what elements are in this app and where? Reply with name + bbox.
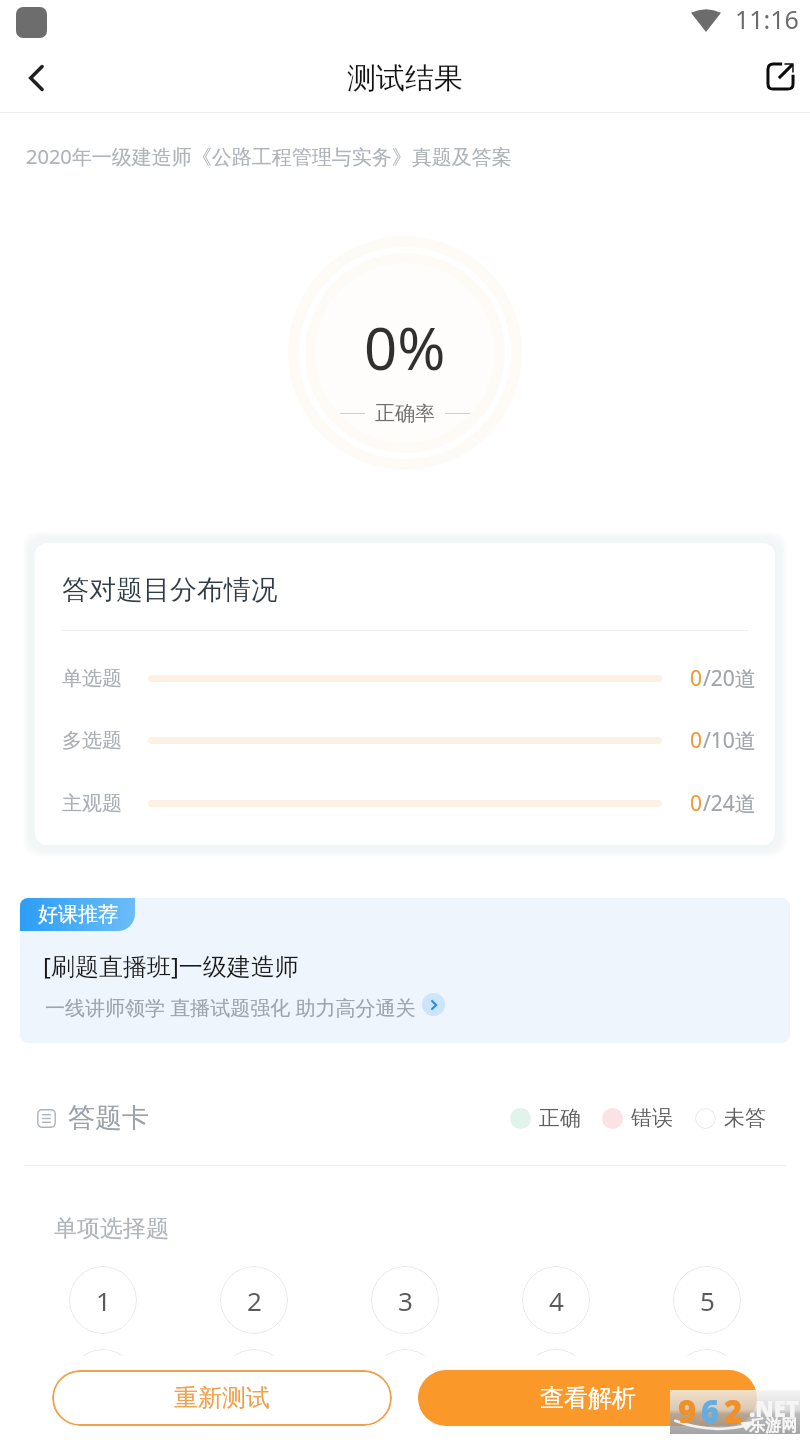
button[interactable]: 2 (220, 1266, 288, 1334)
staticText: 5 (700, 1283, 715, 1318)
staticText: 答题卡 (68, 1101, 149, 1135)
staticText: .NET (749, 1393, 799, 1423)
staticText: 4 (549, 1283, 564, 1318)
staticText: 1 (96, 1283, 111, 1318)
staticText: 7 (247, 1366, 262, 1401)
staticText: 2 (247, 1283, 262, 1318)
staticText: 未答 (724, 1105, 766, 1131)
staticText: /20道 (703, 664, 756, 693)
staticText: [刷题直播班]一级建造师 (43, 949, 299, 982)
staticText: 2020年一级建造师《公路工程管理与实务》真题及答案 (26, 143, 512, 170)
button[interactable]: 4 (522, 1266, 590, 1334)
button[interactable]: 正确 (510, 1105, 581, 1131)
staticText: 主观题 (62, 791, 122, 816)
button[interactable]: 错误 (602, 1105, 673, 1131)
staticText: 查看解析 (540, 1383, 636, 1413)
staticText: 正确率 (375, 401, 435, 426)
staticText: 0 (690, 789, 703, 818)
staticText: 9 (678, 1390, 697, 1432)
staticText: 0% (364, 308, 446, 387)
button[interactable]: 重新测试 (52, 1370, 392, 1426)
button[interactable]: 7 (220, 1349, 288, 1417)
staticText: /24道 (703, 789, 756, 818)
button[interactable]: 好课推荐 (20, 898, 790, 1043)
staticText: 测试结果 (347, 60, 463, 97)
staticText: 6 (96, 1366, 111, 1401)
button[interactable]: 8 (371, 1349, 439, 1417)
staticText: 11:16 (735, 2, 799, 36)
button[interactable]: Share (753, 49, 807, 103)
button[interactable]: Back (8, 49, 66, 107)
button[interactable]: 6 (69, 1349, 137, 1417)
staticText: 多选题 (62, 728, 122, 753)
staticText: 单项选择题 (54, 1214, 169, 1243)
button[interactable]: 答题卡 (37, 1101, 149, 1135)
staticText: 10 (692, 1366, 722, 1401)
staticText: 好课推荐 (38, 902, 118, 927)
staticText: 3 (398, 1283, 413, 1318)
button[interactable]: 3 (371, 1266, 439, 1334)
staticText: 错误 (631, 1105, 673, 1131)
staticText: 重新测试 (174, 1383, 270, 1413)
button[interactable]: 查看解析 (418, 1370, 757, 1426)
staticText: 一线讲师领学 直播试题强化 助力高分通关 (45, 994, 416, 1021)
button[interactable]: 10 (673, 1349, 741, 1417)
staticText: 6 (701, 1390, 720, 1432)
button[interactable]: 未答 (695, 1105, 766, 1131)
staticText: 0 (690, 664, 703, 693)
staticText: 9 (549, 1366, 564, 1401)
staticText: 0 (690, 726, 703, 755)
staticText: 正确 (539, 1105, 581, 1131)
staticText: 2 (724, 1390, 743, 1432)
staticText: 答对题目分布情况 (62, 573, 278, 607)
button[interactable]: 5 (673, 1266, 741, 1334)
staticText: /10道 (703, 726, 756, 755)
staticText: 单选题 (62, 666, 122, 691)
button[interactable]: 1 (69, 1266, 137, 1334)
button[interactable]: 9 (522, 1349, 590, 1417)
staticText: 乐游网 (749, 1416, 797, 1436)
